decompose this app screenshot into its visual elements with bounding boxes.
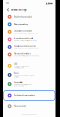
button[interactable]: In-ear detection for calls — [3, 36, 55, 43]
button[interactable]: Seamless earbud connection — [3, 43, 55, 51]
staticText: Earbuds software update — [14, 94, 35, 96]
button[interactable]: Reset — [3, 70, 55, 79]
staticText: Noisy voice wake up — [14, 23, 28, 25]
staticText: 9:41 — [6, 2, 9, 4]
button[interactable]: Back — [6, 7, 10, 12]
button[interactable]: LED — [3, 61, 55, 70]
staticText: Hear what's happening around you — [14, 32, 38, 34]
staticText: Accessibility — [14, 81, 23, 83]
button[interactable]: Alarm sound reminders — [3, 51, 55, 58]
staticText: Switch between your Galaxy devices — [14, 47, 39, 49]
button[interactable]: Earbuds software update — [3, 90, 55, 100]
button[interactable]: Use ambient sound mode — [3, 28, 55, 36]
staticText: Earbuds settings — [10, 9, 26, 11]
staticText: In-ear detection for calls — [14, 37, 33, 39]
staticText: Use ambient sound mode — [14, 30, 32, 32]
staticText: Reset earbuds to their original settings — [14, 74, 34, 78]
staticText: Hear alarms through your earbuds — [14, 55, 39, 56]
staticText: Adjust sound settings to suit your heari… — [14, 84, 31, 87]
staticText: Answer calls by putting in earbuds — [14, 40, 37, 41]
staticText: About earbuds — [14, 105, 26, 107]
button[interactable]: Read notifications aloud — [3, 13, 55, 20]
staticText: LED — [14, 63, 17, 65]
staticText: Alarm sound reminders — [14, 53, 31, 55]
button[interactable]: Noisy voice wake up — [3, 21, 55, 28]
button[interactable]: About earbuds — [3, 100, 55, 112]
staticText: Control the LED light on the charging ca… — [14, 65, 29, 69]
staticText: Read notifications aloud — [14, 16, 32, 18]
button[interactable]: Accessibility — [3, 79, 55, 89]
staticText: Reset — [14, 72, 19, 74]
staticText: Seamless earbud connection — [14, 45, 36, 47]
